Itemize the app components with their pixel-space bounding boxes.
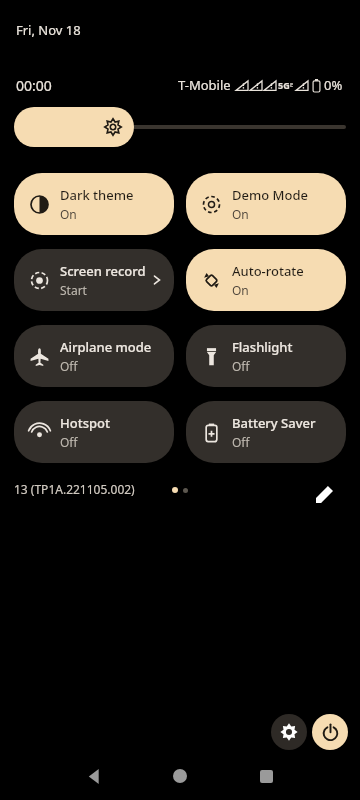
staticText: T-Mobile	[178, 76, 231, 94]
staticText: On	[60, 206, 77, 222]
staticText: Screen record	[60, 262, 146, 280]
staticText: Airplane mode	[60, 338, 152, 356]
button[interactable]: Airplane mode	[14, 325, 174, 387]
staticText: Battery Saver	[232, 414, 316, 432]
button[interactable]: Battery Saver	[186, 401, 346, 463]
button[interactable]: Power	[312, 714, 348, 750]
button[interactable]: Back	[62, 752, 126, 800]
staticText: On	[232, 282, 249, 298]
button[interactable]: Demo Mode	[186, 173, 346, 235]
button[interactable]: Screen record	[14, 249, 174, 311]
staticText: E	[290, 81, 294, 89]
staticText: 13 (TP1A.221105.002)	[14, 481, 135, 497]
staticText: Hotspot	[60, 414, 110, 432]
staticText: Off	[232, 434, 250, 450]
staticText: Fri, Nov 18	[16, 21, 81, 39]
staticText: On	[232, 206, 249, 222]
button[interactable]: Hotspot	[14, 401, 174, 463]
staticText: Off	[60, 434, 78, 450]
staticText: Start	[60, 282, 87, 298]
button[interactable]: Brightness	[14, 107, 346, 147]
staticText: Demo Mode	[232, 186, 308, 204]
staticText: Auto-rotate	[232, 262, 304, 280]
staticText: 00:00	[16, 76, 52, 95]
button[interactable]: Edit tiles	[306, 476, 342, 512]
staticText: 0%	[324, 76, 343, 94]
button[interactable]: Settings	[271, 714, 307, 750]
button[interactable]: Recents	[234, 752, 298, 800]
staticText: Dark theme	[60, 186, 134, 204]
staticText: Flashlight	[232, 338, 293, 356]
button[interactable]: Flashlight	[186, 325, 346, 387]
staticText: 5G	[278, 79, 290, 91]
button[interactable]: Home	[148, 752, 212, 800]
staticText: Off	[60, 358, 78, 374]
button[interactable]: Auto-rotate	[186, 249, 346, 311]
staticText: Off	[232, 358, 250, 374]
button[interactable]: Dark theme	[14, 173, 174, 235]
